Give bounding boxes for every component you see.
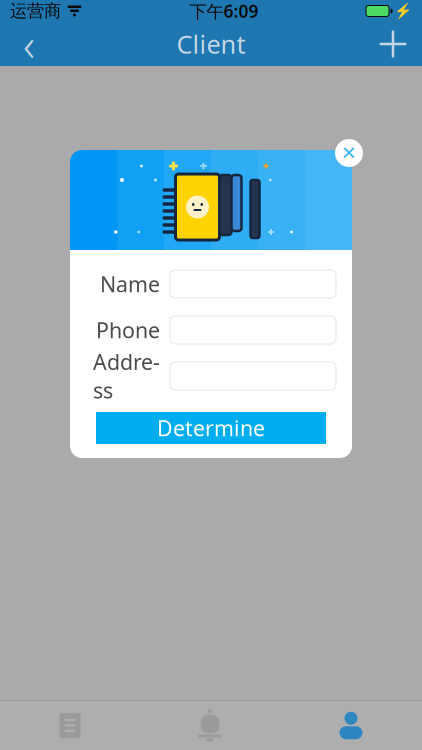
staticText: ‹	[23, 14, 35, 74]
staticText: 下午6:09	[189, 0, 258, 22]
staticText: Determine	[157, 414, 265, 442]
staticText: Phone	[96, 316, 160, 344]
staticText: Client	[176, 27, 245, 61]
staticText: ✕	[341, 142, 357, 164]
button[interactable]: Close	[335, 139, 363, 167]
button[interactable]: Determine	[96, 412, 326, 444]
button[interactable]: Notifications	[140, 701, 280, 750]
button[interactable]: Back	[2, 22, 56, 66]
staticText: 运营商	[10, 0, 61, 22]
button[interactable]: Documents	[0, 701, 140, 750]
staticText: Address	[93, 348, 160, 404]
staticText: Name	[100, 270, 160, 298]
staticText: ⚡	[394, 3, 412, 19]
button[interactable]: Profile	[280, 701, 422, 750]
button[interactable]: Add	[366, 22, 420, 66]
